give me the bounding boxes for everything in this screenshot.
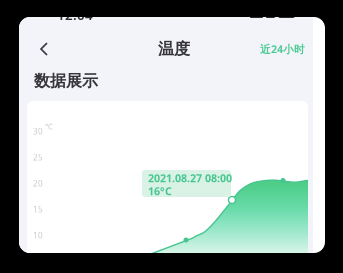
staticText: 30: [33, 126, 43, 137]
staticText: 15: [33, 204, 43, 215]
staticText: 温度: [158, 39, 190, 59]
staticText: 12:04: [57, 6, 93, 24]
staticText: 20: [33, 178, 43, 189]
staticText: 16°C: [148, 184, 172, 198]
staticText: 数据展示: [34, 71, 98, 91]
staticText: 2021.08.27 08:00: [148, 171, 232, 185]
staticText: 近24小时: [260, 42, 305, 56]
button[interactable]: Back: [28, 34, 60, 64]
button[interactable]: 近24小时: [257, 34, 313, 64]
staticText: 10: [33, 230, 43, 241]
staticText: ℃: [45, 121, 53, 132]
staticText: 25: [33, 152, 43, 163]
